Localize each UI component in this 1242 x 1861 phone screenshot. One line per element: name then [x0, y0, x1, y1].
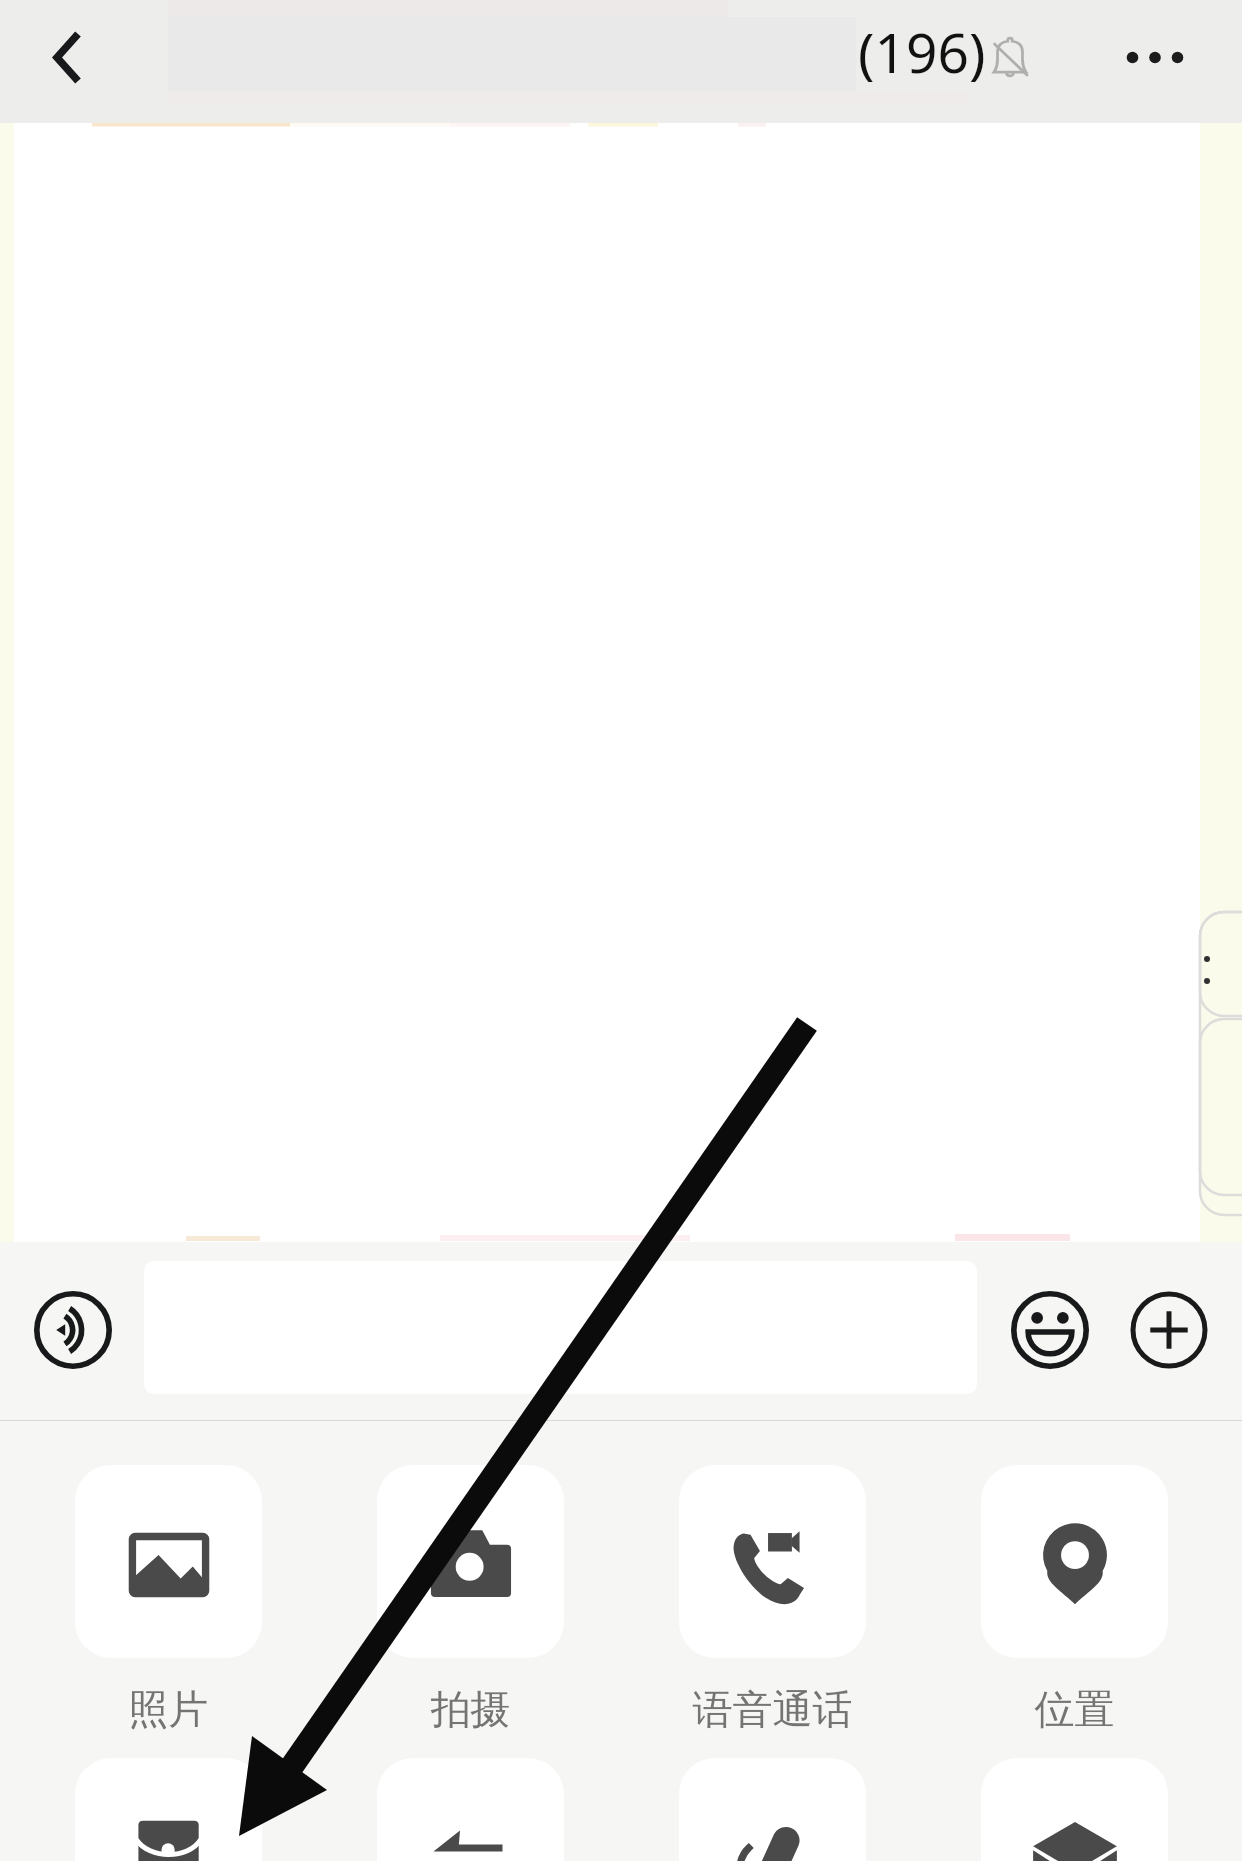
button[interactable]: More — [1130, 1291, 1208, 1369]
button[interactable]: (196) — [858, 14, 986, 104]
button[interactable]: Voice input — [34, 1291, 112, 1369]
staticText: 照片 — [75, 1684, 262, 1734]
button[interactable] — [75, 1758, 262, 1861]
button[interactable]: 位置 — [981, 1465, 1168, 1734]
staticText: 位置 — [981, 1684, 1168, 1734]
button[interactable]: Emoji — [1011, 1291, 1089, 1369]
staticText: 拍摄 — [377, 1684, 564, 1734]
button[interactable]: 拍摄 — [377, 1465, 564, 1734]
button[interactable] — [981, 1758, 1168, 1861]
button[interactable]: More options — [1110, 13, 1200, 103]
staticText: 语音通话 — [679, 1684, 866, 1734]
button[interactable]: 语音通话 — [679, 1465, 866, 1734]
button[interactable] — [144, 1261, 977, 1394]
button[interactable]: Back — [12, 8, 118, 114]
button[interactable]: 照片 — [75, 1465, 262, 1734]
staticText: (196) — [858, 14, 986, 89]
button[interactable] — [679, 1758, 866, 1861]
button[interactable]: Notifications muted — [985, 33, 1035, 83]
button[interactable] — [377, 1758, 564, 1861]
